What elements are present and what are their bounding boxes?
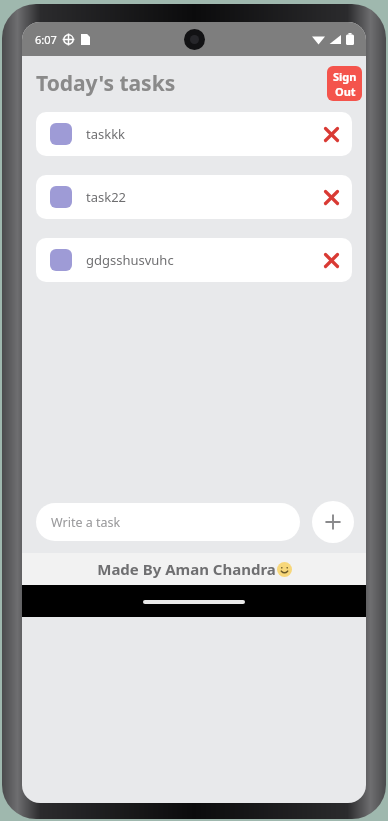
- button[interactable]: Delete gdgsshusvuhc: [314, 243, 348, 277]
- staticText: task22: [86, 188, 314, 206]
- staticText: Today's tasks: [36, 69, 176, 98]
- staticText: Made By Aman Chandra: [97, 559, 276, 579]
- staticText: gdgsshusvuhc: [86, 251, 314, 269]
- staticText: Sign: [333, 69, 357, 84]
- button[interactable]: Delete task22: [314, 180, 348, 214]
- staticText: Write a task: [51, 514, 121, 531]
- button[interactable]: Toggle gdgsshusvuhc: [50, 249, 72, 271]
- button[interactable]: Toggle task22: [50, 186, 72, 208]
- staticText: taskkk: [86, 125, 314, 143]
- button[interactable]: Sign: [327, 66, 362, 101]
- button[interactable]: Add task: [312, 501, 354, 543]
- button[interactable]: Toggle task22: [36, 175, 352, 219]
- staticText: Out: [335, 84, 356, 99]
- button[interactable]: Toggle gdgsshusvuhc: [36, 238, 352, 282]
- button[interactable]: Delete taskkk: [314, 117, 348, 151]
- staticText: 6:07: [35, 32, 57, 47]
- button[interactable]: Toggle taskkk: [36, 112, 352, 156]
- button[interactable]: Toggle taskkk: [50, 123, 72, 145]
- button[interactable]: Write a task: [36, 503, 300, 541]
